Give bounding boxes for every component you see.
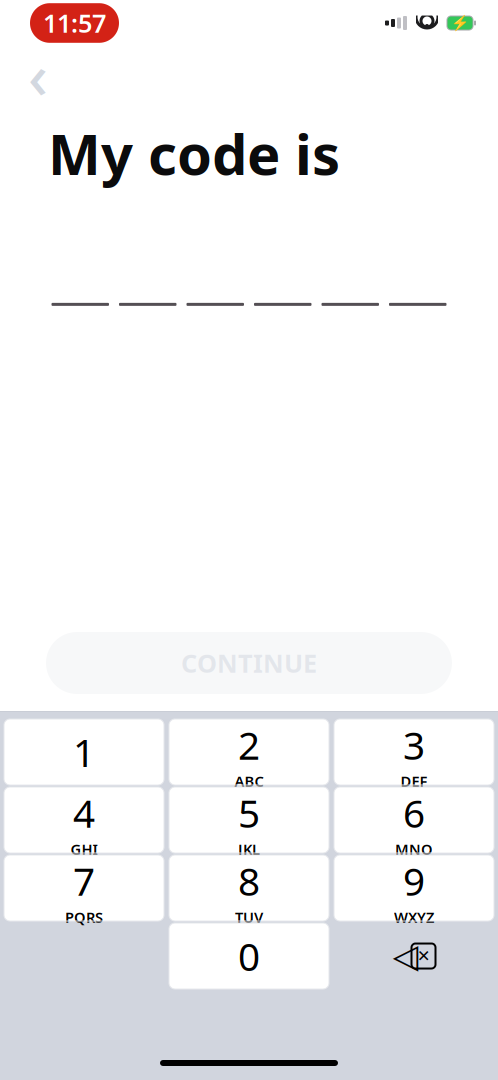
staticText: 1 bbox=[73, 726, 95, 778]
staticText: ‹ bbox=[28, 34, 48, 116]
button[interactable]: 9 bbox=[334, 855, 494, 921]
button[interactable]: 2 bbox=[169, 719, 329, 785]
staticText: ◁ bbox=[392, 937, 418, 975]
staticText: 6 bbox=[403, 787, 425, 838]
staticText: 7 bbox=[73, 855, 95, 906]
staticText: MNO bbox=[395, 839, 433, 859]
staticText: CONTINUE bbox=[181, 646, 317, 680]
staticText: 8 bbox=[238, 855, 260, 906]
staticText: 4 bbox=[73, 787, 95, 838]
staticText: ✕ bbox=[417, 947, 430, 965]
staticText: 0 bbox=[238, 930, 260, 982]
staticText: 9 bbox=[403, 855, 425, 906]
staticText: GHI bbox=[70, 839, 97, 859]
button[interactable]: Delete bbox=[334, 923, 494, 989]
staticText: JKL bbox=[238, 839, 260, 859]
staticText: 11:57 bbox=[43, 6, 106, 40]
staticText: ABC bbox=[234, 771, 263, 791]
button[interactable]: 5 bbox=[169, 787, 329, 853]
button[interactable]: 1 bbox=[4, 719, 164, 785]
staticText: DEF bbox=[400, 771, 427, 791]
staticText: My code is bbox=[48, 116, 340, 190]
button[interactable]: 6 bbox=[334, 787, 494, 853]
button[interactable]: 0 bbox=[169, 923, 329, 989]
staticText: WXYZ bbox=[394, 907, 434, 927]
staticText: 2 bbox=[238, 719, 260, 770]
staticText: PQRS bbox=[65, 907, 103, 927]
staticText: TUV bbox=[235, 907, 263, 927]
button[interactable]: Back bbox=[16, 53, 60, 97]
button[interactable]: 4 bbox=[4, 787, 164, 853]
button[interactable]: 3 bbox=[334, 719, 494, 785]
staticText: 5 bbox=[238, 787, 260, 838]
button[interactable]: CONTINUE bbox=[46, 632, 452, 694]
staticText: ⚡ bbox=[451, 15, 469, 31]
staticText: 3 bbox=[403, 719, 425, 770]
button[interactable]: 7 bbox=[4, 855, 164, 921]
button[interactable]: 8 bbox=[169, 855, 329, 921]
